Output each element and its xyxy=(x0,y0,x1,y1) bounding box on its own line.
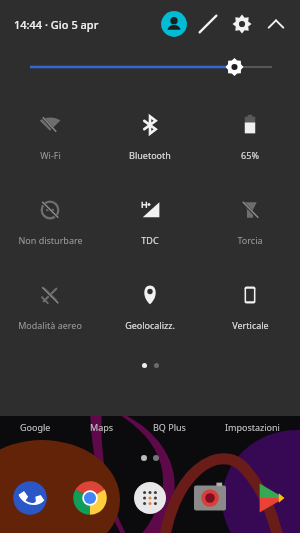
button[interactable]: Geolocalizz. xyxy=(100,268,200,353)
staticText: Non disturbare xyxy=(18,234,83,246)
button[interactable]: Non disturbare xyxy=(0,183,100,268)
button[interactable]: Torcia xyxy=(200,183,300,268)
button[interactable]: Bluetooth xyxy=(100,98,200,183)
button[interactable]: TDC xyxy=(100,183,200,268)
button[interactable]: Impostazioni xyxy=(225,421,280,433)
button[interactable]: Apps xyxy=(130,478,170,518)
staticText: 65% xyxy=(241,149,259,161)
button[interactable]: Modalità aereo xyxy=(0,268,100,353)
staticText: Bluetooth xyxy=(129,149,171,161)
staticText: Impostazioni xyxy=(225,421,280,433)
button[interactable]: Google xyxy=(20,421,51,433)
staticText: Modalità aereo xyxy=(18,319,82,331)
staticText: Verticale xyxy=(232,319,269,331)
staticText: Wi-Fi xyxy=(40,149,61,161)
button[interactable]: Brightness xyxy=(0,48,300,86)
staticText: 14:44 · Gio 5 apr xyxy=(14,17,99,32)
staticText: TDC xyxy=(141,234,159,246)
button[interactable]: Maps xyxy=(90,421,114,433)
button[interactable]: Wi-Fi xyxy=(0,98,100,183)
staticText: Google xyxy=(20,421,51,433)
staticText: Torcia xyxy=(237,234,263,246)
staticText: Geolocalizz. xyxy=(125,319,175,331)
button[interactable]: Phone xyxy=(10,478,50,518)
button[interactable]: Chrome xyxy=(70,478,110,518)
button[interactable]: Edit xyxy=(194,10,222,38)
button[interactable]: Verticale xyxy=(200,268,300,353)
button[interactable]: Play Store xyxy=(250,478,290,518)
button[interactable]: Settings xyxy=(228,10,256,38)
button[interactable]: Account xyxy=(160,10,188,38)
staticText: BQ Plus xyxy=(153,421,186,433)
button[interactable]: Collapse xyxy=(262,10,290,38)
staticText: Maps xyxy=(90,421,114,433)
button[interactable]: BQ Plus xyxy=(153,421,186,433)
button[interactable]: Camera xyxy=(190,478,230,518)
button[interactable]: 65% xyxy=(200,98,300,183)
